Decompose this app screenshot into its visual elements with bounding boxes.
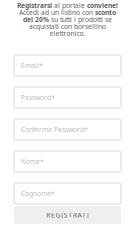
staticText: elettronico.: [49, 29, 85, 38]
staticText: Registrarsi al portale conviene!: [17, 1, 118, 10]
button[interactable]: Conferma Password*: [14, 119, 121, 140]
staticText: REGISTRATI: [46, 210, 89, 220]
staticText: Nome*: [21, 157, 44, 166]
staticText: Cognome*: [21, 189, 55, 198]
staticText: Password*: [21, 93, 55, 102]
button[interactable]: Nome*: [14, 151, 121, 172]
button[interactable]: Cognome*: [14, 183, 121, 204]
staticText: acquistati con borsellino: [29, 22, 106, 31]
staticText: Accedi ad un listino con sconto: [19, 8, 116, 17]
staticText: Email*: [21, 61, 43, 70]
button[interactable]: REGISTRATI: [14, 206, 121, 224]
button[interactable]: Email*: [14, 55, 121, 76]
button[interactable]: Password*: [14, 87, 121, 108]
staticText: del 20% su tutti i prodotti se: [23, 15, 112, 24]
staticText: Conferma Password*: [21, 125, 88, 134]
